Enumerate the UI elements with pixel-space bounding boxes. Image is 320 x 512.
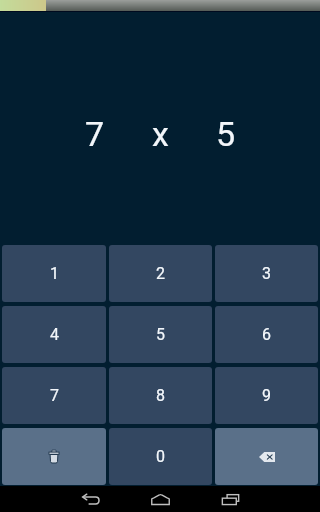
staticText: 2 <box>156 264 165 283</box>
staticText: 8 <box>156 386 165 405</box>
button[interactable]: Back <box>55 486 125 512</box>
button[interactable]: 8 <box>109 367 212 424</box>
staticText: 5 <box>156 325 165 344</box>
button[interactable]: 1 <box>2 245 106 302</box>
staticText: 4 <box>50 325 59 344</box>
staticText: 5 <box>216 114 236 154</box>
button[interactable]: 3 <box>215 245 318 302</box>
staticText: 6 <box>262 325 271 344</box>
button[interactable]: 2 <box>109 245 212 302</box>
button[interactable]: 7 <box>2 367 106 424</box>
staticText: 3 <box>262 264 271 283</box>
staticText: 7 <box>50 386 59 405</box>
staticText: x <box>152 114 169 154</box>
staticText: 9 <box>262 386 271 405</box>
button[interactable]: 4 <box>2 306 106 363</box>
staticText: 7 <box>85 114 105 154</box>
button[interactable]: Home <box>125 486 195 512</box>
button[interactable]: 9 <box>215 367 318 424</box>
button[interactable]: Clear <box>2 428 106 485</box>
staticText: 1 <box>50 264 59 283</box>
button[interactable]: Backspace <box>215 428 318 485</box>
button[interactable]: 5 <box>109 306 212 363</box>
button[interactable]: Recents <box>195 486 265 512</box>
button[interactable]: 6 <box>215 306 318 363</box>
button[interactable]: 0 <box>109 428 212 485</box>
staticText: 0 <box>156 447 165 466</box>
